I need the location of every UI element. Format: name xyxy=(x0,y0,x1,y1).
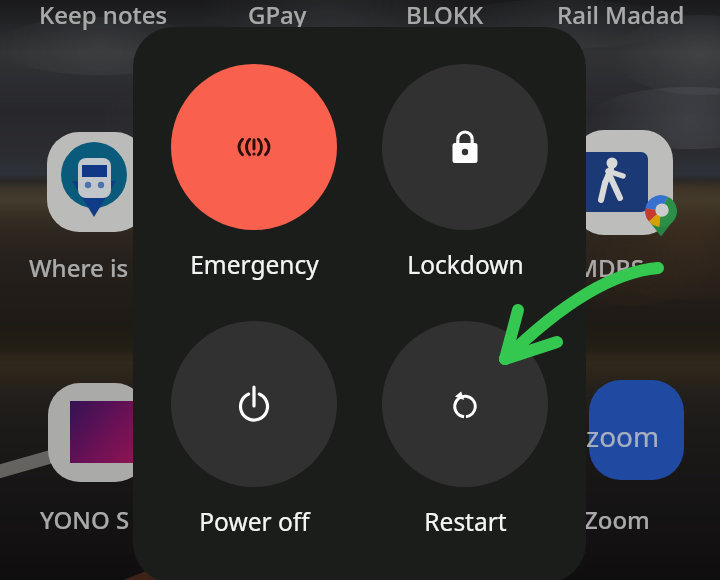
staticText: Emergency xyxy=(190,248,319,281)
staticText: Keep notes xyxy=(39,0,168,31)
staticText: MDRS xyxy=(576,251,644,284)
staticText: BLOKK xyxy=(406,0,484,31)
staticText: zoom xyxy=(586,417,660,455)
button[interactable]: Power off xyxy=(171,321,337,538)
staticText: Power off xyxy=(199,505,310,538)
button[interactable]: Emergency xyxy=(171,64,337,281)
staticText: Zoom xyxy=(584,503,650,536)
staticText: GPay xyxy=(248,0,307,31)
staticText: YONO S xyxy=(40,503,130,536)
button[interactable]: Restart xyxy=(382,321,548,538)
staticText: Restart xyxy=(424,505,507,538)
button[interactable]: Lockdown xyxy=(382,64,548,281)
staticText: Lockdown xyxy=(407,248,524,281)
staticText: Rail Madad xyxy=(557,0,685,31)
staticText: Where is m xyxy=(29,251,158,284)
